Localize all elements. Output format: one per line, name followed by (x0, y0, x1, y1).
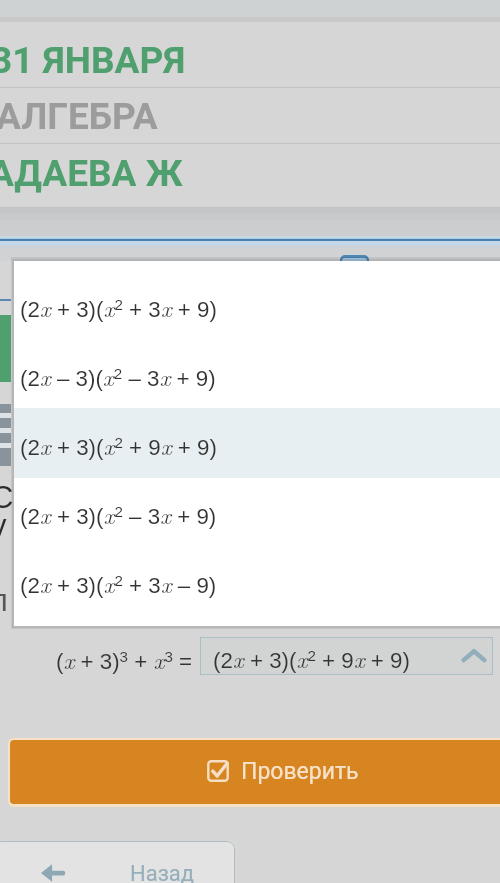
staticText: С (0, 480, 14, 515)
staticText: Проверить (241, 758, 359, 785)
staticText: АДАЕВА Ж (0, 152, 183, 195)
staticText: 31 ЯНВАРЯ (0, 39, 186, 82)
staticText: (2x + 3)(x2 + 3x + 9) (20, 290, 217, 323)
button[interactable]: (2x + 3)(x2 + 3x – 9) (14, 546, 500, 615)
button[interactable]: (2x + 3)(x2 + 9x + 9) (14, 408, 500, 477)
staticText: (2x + 3)(x2 + 9x + 9) (20, 428, 217, 461)
other: Collapse (461, 643, 487, 669)
staticText: (2x + 3)(x2 + 9x + 9) (213, 641, 410, 674)
button[interactable]: Проверить (10, 740, 500, 804)
staticText: (2x + 3)(x2 – 3x + 9) (20, 497, 217, 530)
button[interactable]: (2x + 3)(x2 – 3x + 9) (14, 477, 500, 546)
staticText: АЛГЕБРА (0, 95, 158, 138)
button[interactable]: Back (0, 841, 235, 883)
staticText: (2x – 3)(x2 – 3x + 9) (20, 359, 216, 392)
staticText: у (0, 508, 7, 543)
staticText: п (0, 583, 8, 618)
staticText: (2x + 3)(x2 + 3x – 9) (20, 566, 217, 599)
staticText: (x + 3)3 + x3 = (56, 642, 193, 675)
button[interactable]: (2x – 3)(x2 – 3x + 9) (14, 339, 500, 408)
other: Back (41, 864, 65, 882)
button[interactable]: 31 ЯНВАРЯ (0, 22, 500, 88)
button[interactable]: АДАЕВА Ж (0, 145, 500, 208)
button[interactable]: АЛГЕБРА (0, 89, 500, 144)
staticText: Назад (130, 861, 195, 883)
button[interactable]: (2x + 3)(x2 + 3x + 9) (14, 270, 500, 339)
button[interactable]: (2x + 3)(x2 + 9x + 9) (200, 637, 493, 675)
